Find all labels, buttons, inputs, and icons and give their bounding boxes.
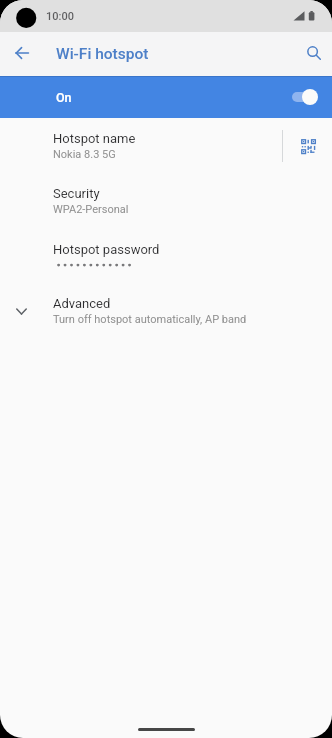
button[interactable]: On (0, 76, 332, 118)
staticText: Hotspot password (53, 242, 160, 257)
staticText: Security (53, 186, 100, 201)
button[interactable]: Navigate up (5, 36, 38, 69)
staticText: On (56, 90, 72, 105)
staticText: Nokia 8.3 5G (53, 148, 116, 161)
staticText: Wi-Fi hotspot (56, 45, 149, 63)
staticText: Hotspot name (53, 131, 136, 146)
button[interactable]: Hotspot password (0, 228, 332, 283)
button[interactable]: Hotspot name (0, 118, 332, 173)
staticText: 10:00 (46, 10, 74, 23)
button[interactable]: Security (0, 173, 332, 228)
staticText: Advanced (53, 296, 111, 311)
button[interactable]: Advanced (0, 283, 332, 338)
button[interactable]: Share hotspot QR code (292, 130, 324, 162)
staticText: Turn off hotspot automatically, AP band (53, 313, 247, 326)
other: Hotspot on (292, 88, 318, 106)
staticText: WPA2-Personal (53, 203, 129, 216)
button[interactable]: Search (297, 36, 330, 69)
